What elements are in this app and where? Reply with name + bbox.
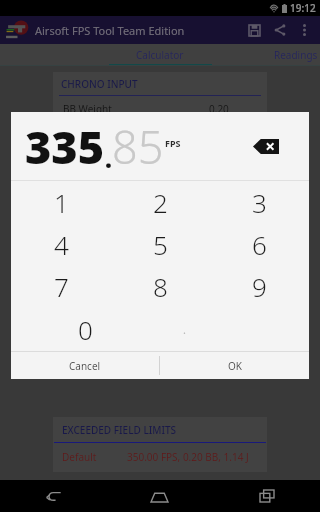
staticText: 0 [78,312,93,347]
staticText: Cancel [69,359,101,373]
button[interactable]: 0 [11,308,111,351]
button[interactable]: Back [0,480,106,512]
staticText: 19:12 [290,1,316,15]
button[interactable]: 8 [111,265,210,308]
staticText: . [183,322,186,337]
staticText: 5 [153,227,168,262]
staticText: BB Weight [63,102,112,116]
button[interactable]: Share [267,17,293,43]
staticText: 9 [252,269,267,304]
button[interactable]: Recent apps [213,480,320,512]
staticText: 350.00 FPS, 0.20 BB, 1.14 J [127,450,249,464]
staticText: 6 [252,227,267,262]
staticText: 7 [54,269,69,304]
button[interactable]: 1 [11,181,111,223]
button[interactable]: More options [293,19,315,41]
button[interactable]: 3 [210,181,309,223]
staticText: 335 [25,116,105,177]
button[interactable]: OK [160,352,309,379]
staticText: 8 [153,269,168,304]
button[interactable]: 7 [11,265,111,308]
staticText: Airsoft FPS Tool Team Edition [35,23,185,38]
staticText: EXCEEDED FIELD LIMITS [62,423,177,437]
staticText: 2 [153,185,168,220]
button[interactable]: Backspace [246,130,286,162]
staticText: Default [62,450,97,464]
staticText: Readings [274,48,318,62]
button[interactable]: Calculator [97,44,223,66]
staticText: 1 [54,185,69,220]
staticText: FPS [165,137,181,149]
staticText: 0.20 [209,102,229,116]
staticText: Calculator [136,48,184,62]
staticText: 3 [252,185,267,220]
button[interactable]: 5 [111,223,210,265]
button[interactable]: Save [241,17,267,43]
staticText: OK [228,359,242,373]
staticText: 4 [54,227,69,262]
button[interactable]: Cancel [11,352,159,379]
staticText: CHRONO INPUT [61,77,138,91]
staticText: 85 [112,116,164,177]
button[interactable]: 2 [111,181,210,223]
staticText: . [105,142,112,175]
button[interactable]: Home [106,480,213,512]
button[interactable]: 9 [210,265,309,308]
button[interactable]: Readings [223,44,320,66]
button[interactable]: 4 [11,223,111,265]
button[interactable]: 6 [210,223,309,265]
